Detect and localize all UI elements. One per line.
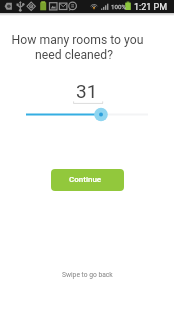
staticText: need cleaned? bbox=[0, 48, 148, 62]
staticText: Continue bbox=[69, 175, 102, 184]
button[interactable]: Swipe to go back bbox=[0, 271, 174, 279]
staticText: 100% bbox=[111, 3, 126, 10]
button[interactable]: Continue bbox=[51, 169, 124, 191]
staticText: How many rooms to you bbox=[0, 33, 155, 47]
staticText: Swipe to go back bbox=[62, 271, 113, 279]
staticText: 31 bbox=[76, 80, 98, 102]
staticText: 1:21 PM bbox=[134, 2, 168, 13]
